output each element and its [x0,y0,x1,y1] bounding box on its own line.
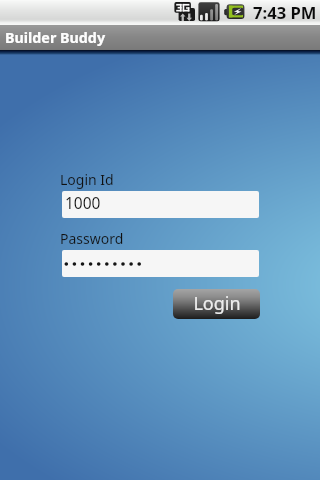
button[interactable]: Password [62,250,259,277]
button[interactable]: Login [173,289,260,319]
staticText: Password [60,229,124,248]
button[interactable]: 1000 [62,191,259,218]
staticText: Builder Buddy [5,28,106,47]
staticText: Login [193,291,241,316]
staticText: 1000 [65,192,101,213]
staticText: 7:43 PM [253,1,317,24]
staticText: Login Id [60,170,114,189]
